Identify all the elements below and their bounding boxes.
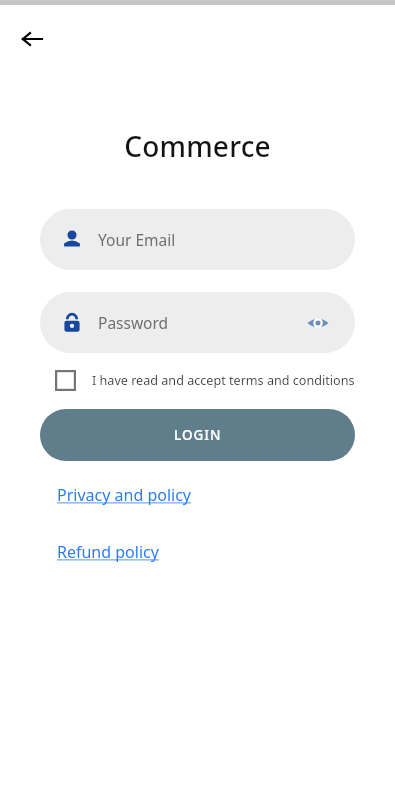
button[interactable]: LOGIN <box>40 409 355 461</box>
button[interactable]: Show password <box>301 306 335 340</box>
button[interactable]: Privacy and policy <box>57 484 192 506</box>
staticText: Privacy and policy <box>57 484 192 506</box>
staticText: Your Email <box>98 229 176 250</box>
staticText: Refund policy <box>57 541 159 563</box>
button[interactable]: Back <box>12 19 52 59</box>
staticText: Password <box>98 312 169 333</box>
button[interactable]: Your Email <box>40 209 355 270</box>
staticText: Commerce <box>0 127 395 165</box>
staticText: I have read and accept terms and conditi… <box>92 372 355 389</box>
button[interactable]: Password <box>40 292 355 353</box>
button[interactable]: Refund policy <box>57 541 159 563</box>
staticText: LOGIN <box>174 426 222 444</box>
button[interactable]: I have read and accept terms and conditi… <box>55 370 355 391</box>
